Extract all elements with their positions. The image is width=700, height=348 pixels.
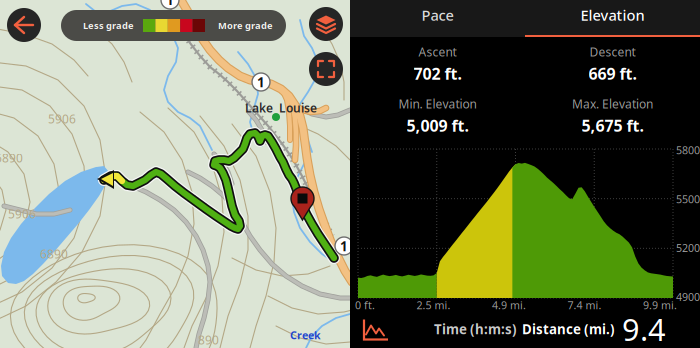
staticText: 5906 [48,111,76,127]
staticText: 5,675 ft. [581,115,643,136]
button[interactable]: Back [7,8,41,42]
staticText: 890 [198,332,219,348]
staticText: 5,009 ft. [406,115,468,136]
staticText: 5906 [8,206,36,222]
staticText: 9.9 mi. [643,298,677,312]
staticText: Pace [421,5,453,25]
staticText: Time (h:m:s) [434,320,517,338]
staticText: 9.4 [622,309,666,348]
staticText: 1 [166,0,174,9]
staticText: 5500 [676,192,700,206]
button[interactable]: Less grade [61,10,286,41]
staticText: 1 [340,237,348,255]
staticText: 1 [257,73,265,91]
staticText: Elevation [580,5,644,25]
staticText: Descent [589,44,635,60]
staticText: 4.9 mi. [492,298,526,312]
staticText: 6890 [40,246,68,262]
staticText: Lake Louise [245,100,317,116]
staticText: 5200 [676,241,700,255]
staticText: Max. Elevation [572,96,653,112]
staticText: 4900 [676,290,700,304]
staticText: Min. Elevation [398,96,476,112]
staticText: 2.5 mi. [416,298,450,312]
staticText: Creek [290,328,321,342]
staticText: 6890 [0,150,23,166]
staticText: Less grade [83,19,134,32]
staticText: 669 ft. [588,63,636,84]
staticText: 7.4 mi. [567,298,601,312]
button[interactable]: Chart [350,310,401,347]
staticText: Distance (mi.) [522,320,615,338]
button[interactable]: Full screen [309,52,343,86]
staticText: Ascent [418,44,456,60]
staticText: 702 ft. [413,63,461,84]
staticText: 5800 [676,143,700,157]
staticText: 0 ft. [355,298,375,312]
button[interactable]: Pace [350,0,525,37]
button[interactable]: Map layers [309,7,343,41]
staticText: More grade [218,19,273,32]
button[interactable]: Elevation [525,0,700,37]
